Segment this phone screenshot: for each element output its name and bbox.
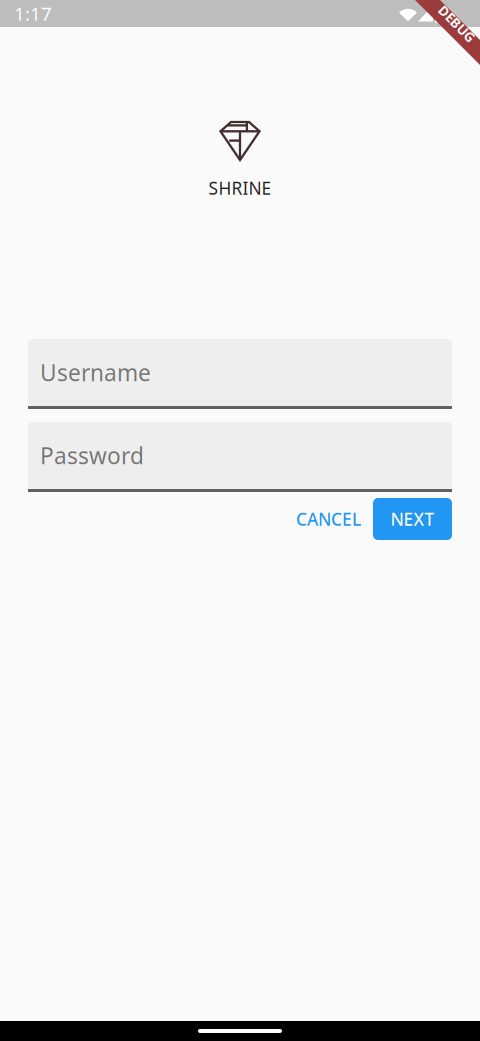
button[interactable]: CANCEL: [294, 498, 363, 540]
staticText: DEBUG: [434, 15, 480, 33]
staticText: SHRINE: [208, 176, 271, 199]
staticText: Username: [40, 357, 151, 387]
staticText: 1:17: [14, 1, 52, 26]
staticText: CANCEL: [296, 507, 361, 530]
staticText: NEXT: [390, 507, 434, 530]
staticText: Password: [40, 440, 144, 470]
button[interactable]: NEXT: [373, 498, 452, 540]
